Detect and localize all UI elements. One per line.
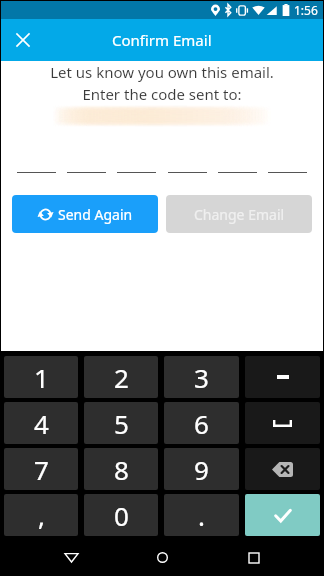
button[interactable]: Change Email — [166, 195, 312, 233]
button[interactable]: 3 — [164, 356, 239, 398]
button[interactable]: . — [164, 494, 239, 536]
staticText: 1:56 — [294, 2, 318, 18]
staticText: 0 — [114, 498, 129, 533]
button[interactable]: 1 — [4, 356, 78, 398]
button[interactable]: , — [4, 494, 78, 536]
button[interactable]: 8 — [84, 448, 158, 490]
button[interactable]: Send Again — [12, 195, 158, 233]
staticText: , — [38, 498, 45, 533]
button[interactable]: 4 — [4, 402, 78, 444]
button[interactable]: Close — [6, 23, 40, 57]
staticText: Send Again — [58, 205, 133, 224]
staticText: Confirm Email — [112, 30, 212, 50]
staticText: 3 — [194, 360, 209, 395]
button[interactable]: 2 — [84, 356, 158, 398]
staticText: Change Email — [194, 205, 285, 224]
button[interactable]: Home — [140, 539, 184, 576]
staticText: 7 — [34, 452, 49, 487]
staticText: Enter the code sent to: — [1, 84, 323, 104]
button[interactable]: Backspace — [245, 448, 320, 490]
staticText: Let us know you own this email. — [1, 62, 323, 82]
staticText: 8 — [114, 452, 129, 487]
staticText: . — [198, 498, 205, 533]
button[interactable]: Recents — [232, 539, 276, 576]
button[interactable]: Space — [245, 402, 320, 444]
staticText: 2 — [114, 360, 129, 395]
button[interactable]: Enter — [245, 494, 320, 536]
button[interactable]: Back — [49, 539, 93, 576]
button[interactable]: 7 — [4, 448, 78, 490]
staticText: 9 — [194, 452, 209, 487]
button[interactable]: 5 — [84, 402, 158, 444]
button[interactable]: 9 — [164, 448, 239, 490]
button[interactable]: 0 — [84, 494, 158, 536]
button[interactable]: 6 — [164, 402, 239, 444]
button[interactable]: Minus — [245, 356, 320, 398]
staticText: 5 — [114, 406, 129, 441]
staticText: 4 — [34, 406, 49, 441]
staticText: 6 — [194, 406, 209, 441]
staticText: 1 — [34, 360, 49, 395]
